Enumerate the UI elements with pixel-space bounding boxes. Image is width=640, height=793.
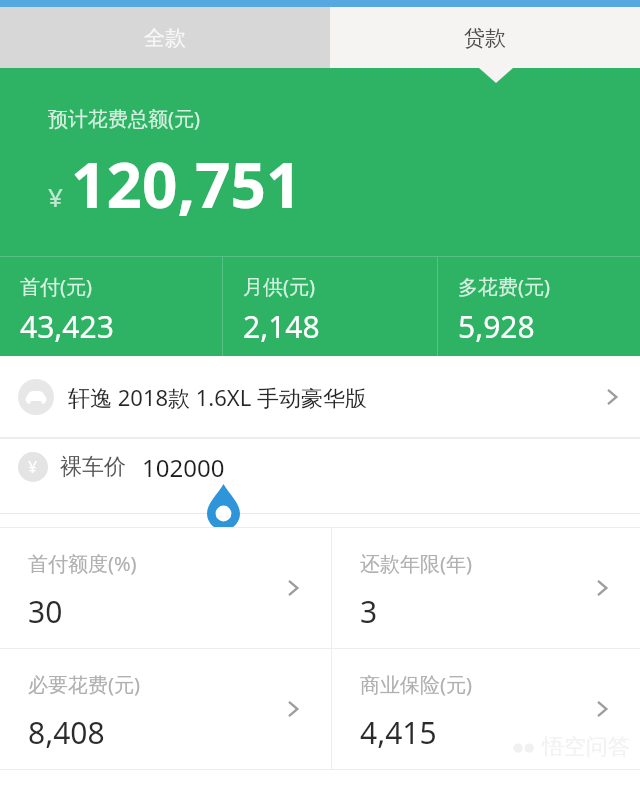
button[interactable]: 还款年限(年) bbox=[332, 528, 640, 648]
staticText: 5,928 bbox=[458, 306, 535, 347]
staticText: 3 bbox=[360, 591, 378, 632]
staticText: 全款 bbox=[144, 25, 186, 51]
button[interactable]: 裸车价滑块 bbox=[207, 484, 240, 530]
staticText: 首付额度(%) bbox=[28, 550, 137, 577]
staticText: 预计花费总额(元) bbox=[48, 105, 200, 132]
button[interactable]: 月供(元) bbox=[223, 257, 437, 356]
staticText: 必要花费(元) bbox=[28, 671, 140, 698]
staticText: 120,751 bbox=[71, 142, 302, 226]
staticText: ¥ bbox=[48, 179, 63, 214]
button[interactable]: 全款 bbox=[0, 7, 330, 68]
staticText: 多花费(元) bbox=[458, 273, 550, 300]
button[interactable]: ¥ bbox=[0, 439, 640, 495]
staticText: 悟空问答 bbox=[542, 733, 630, 761]
staticText: 轩逸 2018款 1.6XL 手动豪华版 bbox=[68, 382, 367, 412]
staticText: 43,423 bbox=[20, 306, 114, 347]
button[interactable]: 商业保险(元) bbox=[332, 649, 640, 769]
staticText: 月供(元) bbox=[243, 273, 315, 300]
staticText: 102000 bbox=[142, 451, 225, 484]
staticText: ¥ bbox=[28, 456, 38, 478]
staticText: 4,415 bbox=[360, 712, 437, 753]
button[interactable]: 轩逸 2018款 1.6XL 手动豪华版 bbox=[0, 356, 640, 437]
button[interactable]: 多花费(元) bbox=[438, 257, 640, 356]
button[interactable]: 必要花费(元) bbox=[0, 649, 331, 769]
button[interactable]: 首付(元) bbox=[0, 257, 222, 356]
staticText: 裸车价 bbox=[60, 453, 126, 481]
staticText: 30 bbox=[28, 591, 63, 632]
button[interactable]: 首付额度(%) bbox=[0, 528, 331, 648]
staticText: 商业保险(元) bbox=[360, 671, 472, 698]
staticText: 还款年限(年) bbox=[360, 550, 472, 577]
button[interactable]: 贷款 bbox=[330, 7, 640, 68]
staticText: 8,408 bbox=[28, 712, 105, 753]
staticText: 贷款 bbox=[464, 25, 506, 51]
staticText: 首付(元) bbox=[20, 273, 92, 300]
staticText: 2,148 bbox=[243, 306, 320, 347]
